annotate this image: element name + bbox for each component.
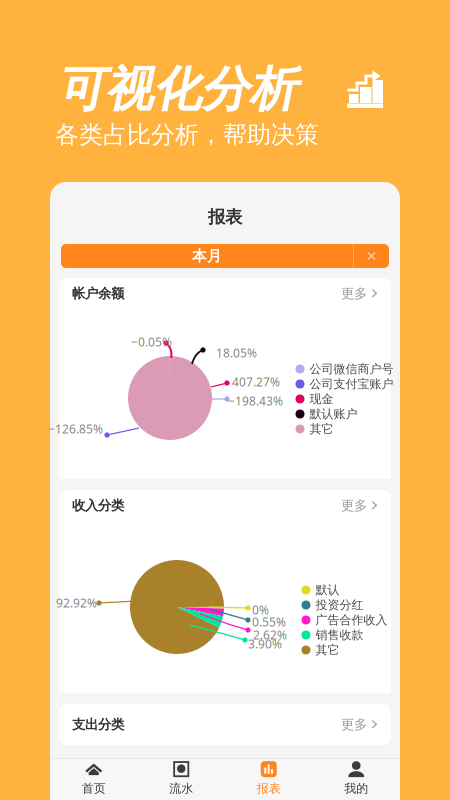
staticText: 92.92% <box>56 595 97 611</box>
staticText: 更多 <box>341 716 367 733</box>
button[interactable]: 本月 <box>61 244 353 268</box>
staticText: 我的 <box>344 781 368 796</box>
staticText: 公司支付宝账户 <box>309 377 393 391</box>
button[interactable]: Clear filter <box>354 244 389 268</box>
staticText: 广告合作收入 <box>315 613 387 627</box>
staticText: 收入分类 <box>72 497 124 514</box>
button[interactable]: 首页 <box>50 758 137 800</box>
button[interactable]: 流水 <box>137 758 225 800</box>
staticText: 帐户余额 <box>72 285 124 302</box>
staticText: 报表 <box>257 781 281 796</box>
staticText: 公司微信商户号 <box>309 362 393 376</box>
staticText: 流水 <box>169 781 193 796</box>
staticText: −198.43% <box>228 393 283 409</box>
staticText: 投资分红 <box>315 598 363 612</box>
button[interactable]: 报表 <box>225 758 312 800</box>
staticText: −126.85% <box>48 421 103 437</box>
staticText: 3.90% <box>248 636 282 652</box>
staticText: 2.62% <box>253 627 287 643</box>
button[interactable]: 更多 <box>341 285 378 302</box>
staticText: 可视化分析 <box>57 60 297 119</box>
staticText: 各类占比分析，帮助决策 <box>55 120 319 149</box>
staticText: 报表 <box>208 206 242 228</box>
staticText: −0.05% <box>131 334 172 350</box>
button[interactable]: 更多 <box>341 716 378 733</box>
staticText: 407.27% <box>232 374 280 390</box>
staticText: 其它 <box>309 422 333 436</box>
staticText: 其它 <box>315 643 339 657</box>
staticText: 现金 <box>309 392 333 406</box>
button[interactable]: 更多 <box>341 497 378 514</box>
staticText: 默认 <box>315 583 339 597</box>
staticText: 支出分类 <box>72 716 124 733</box>
staticText: 默认账户 <box>309 407 357 421</box>
staticText: 0% <box>252 602 269 618</box>
staticText: 本月 <box>192 247 222 265</box>
staticText: 销售收款 <box>315 628 363 642</box>
staticText: 更多 <box>341 285 367 302</box>
staticText: 0.55% <box>252 614 286 630</box>
button[interactable]: 我的 <box>312 758 400 800</box>
staticText: 更多 <box>341 497 367 514</box>
staticText: 18.05% <box>216 345 257 361</box>
staticText: 首页 <box>82 781 106 796</box>
